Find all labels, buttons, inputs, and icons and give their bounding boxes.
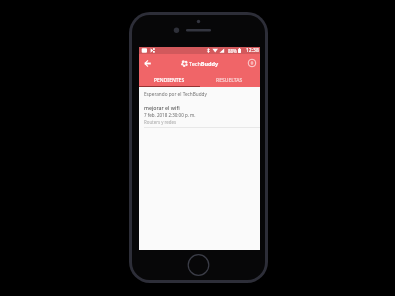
- staticText: mejorar el wifi: [144, 104, 180, 111]
- staticText: PENDIENTES: [154, 77, 185, 84]
- staticText: TechBuddy: [189, 60, 219, 67]
- staticText: 12:38: [246, 47, 259, 54]
- staticText: 88%: [228, 48, 237, 54]
- staticText: Esperando por el TechBuddy: [144, 91, 207, 97]
- staticText: 7 feb. 2018 2:30:00 p. m.: [144, 112, 196, 118]
- button[interactable]: PENDIENTES: [139, 74, 199, 87]
- button[interactable]: Back: [139, 55, 155, 71]
- staticText: RESUELTAS: [216, 77, 243, 84]
- button[interactable]: RESUELTAS: [199, 74, 260, 87]
- button[interactable]: mejorar el wifi: [139, 104, 260, 128]
- button[interactable]: Add new request: [244, 55, 260, 71]
- staticText: Routers y redes: [144, 119, 177, 125]
